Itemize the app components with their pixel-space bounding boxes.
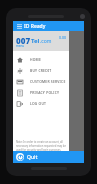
button[interactable]: HOME [13, 54, 69, 65]
button[interactable]: Quit [13, 151, 84, 163]
staticText: menu [16, 44, 25, 48]
button[interactable]: CUSTOMER SERVICE [13, 76, 69, 87]
staticText: BUY CREDIT [30, 68, 52, 73]
button[interactable]: Open navigation drawer [15, 22, 23, 30]
staticText: HOME [30, 57, 41, 62]
staticText: 0.00 [59, 35, 66, 40]
staticText: 007 [16, 35, 31, 46]
button[interactable]: BUY CREDIT [13, 65, 69, 76]
staticText: Note: In order to create an account, all… [16, 140, 66, 160]
staticText: .com [40, 38, 52, 45]
button[interactable]: PRIVACY POLICY [13, 87, 69, 98]
staticText: Quit [27, 154, 38, 161]
staticText: CUSTOMER SERVICE [30, 79, 66, 84]
button[interactable]: LOG OUT [13, 98, 69, 109]
staticText: ID Ready [24, 23, 46, 30]
staticText: PRIVACY POLICY [30, 90, 60, 95]
staticText: LOG OUT [30, 101, 47, 106]
staticText: Tel [31, 37, 40, 45]
